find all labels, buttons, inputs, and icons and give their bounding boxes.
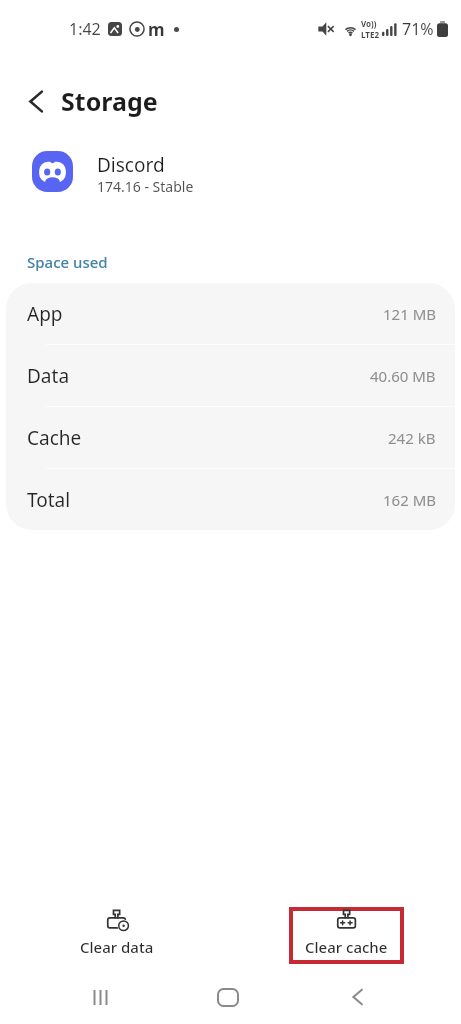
staticText: 40.60 MB <box>370 366 436 386</box>
staticText: 71% <box>402 18 434 40</box>
staticText: Cache <box>27 425 82 451</box>
staticText: Discord <box>97 152 165 178</box>
staticText: Clear cache <box>305 937 388 957</box>
staticText: Storage <box>61 84 158 118</box>
staticText: Data <box>27 363 70 389</box>
button[interactable] <box>72 969 128 1024</box>
staticText: 121 MB <box>383 304 436 324</box>
button[interactable] <box>200 969 256 1024</box>
staticText: 162 MB <box>383 490 436 510</box>
staticText: Clear data <box>80 937 154 957</box>
button[interactable]: App <box>6 283 455 345</box>
staticText: LTE2 <box>361 29 379 40</box>
button[interactable]: Total <box>6 469 455 530</box>
button[interactable]: Clear cache <box>276 903 416 963</box>
staticText: Total <box>27 487 71 513</box>
button[interactable] <box>18 83 54 119</box>
staticText: m <box>148 18 165 41</box>
staticText: 1:42 <box>69 18 101 40</box>
staticText: Vo)) <box>361 18 377 29</box>
button[interactable]: Cache <box>6 407 455 469</box>
staticText: 242 kB <box>388 428 436 448</box>
button[interactable]: Data <box>6 345 455 407</box>
staticText: Space used <box>27 252 108 272</box>
staticText: 174.16 - Stable <box>97 177 194 196</box>
button[interactable] <box>329 969 385 1024</box>
staticText: App <box>27 301 63 327</box>
button[interactable]: Clear data <box>47 903 187 963</box>
